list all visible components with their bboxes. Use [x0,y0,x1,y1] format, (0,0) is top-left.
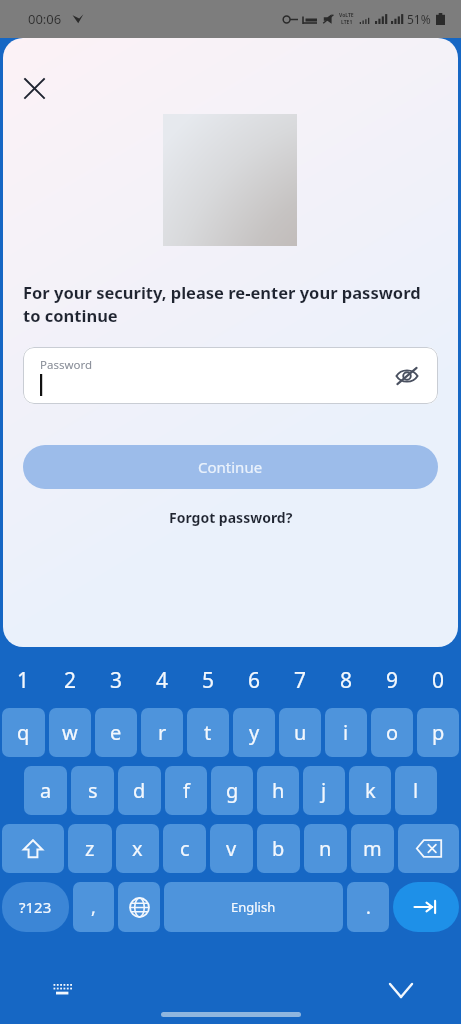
button[interactable]: s [71,766,114,815]
staticText: t [204,719,212,746]
staticText: 00:06 [28,10,62,28]
button[interactable]: a [24,766,67,815]
button[interactable]: 9 [369,659,415,701]
staticText: 4 [156,666,169,695]
staticText: r [158,719,167,746]
other: Shift [22,838,44,860]
staticText: j [321,777,327,804]
button[interactable]: 2 [47,659,93,701]
staticText: 9 [386,666,399,695]
button[interactable]: . [347,882,389,932]
staticText: g [226,777,239,804]
button[interactable]: h [257,766,299,815]
staticText: 3 [110,666,123,695]
button[interactable]: ?123 [2,882,69,932]
button[interactable]: 5 [185,659,231,701]
staticText: 7 [294,666,307,695]
button[interactable]: Show password [390,359,424,393]
button[interactable]: g [211,766,253,815]
staticText: k [365,777,376,804]
button[interactable]: Backspace [398,824,459,873]
staticText: 8 [340,666,353,695]
button[interactable]: Change language [118,882,160,932]
button[interactable]: 8 [323,659,369,701]
staticText: h [272,777,285,804]
staticText: a [40,777,52,804]
staticText: , [91,895,96,920]
button[interactable]: Enter [393,882,459,932]
staticText: 6 [248,666,261,695]
staticText: c [180,835,190,862]
button[interactable]: o [371,708,413,757]
staticText: o [386,719,399,746]
button[interactable]: Keyboard settings [48,975,78,1005]
button[interactable]: q [2,708,45,757]
button[interactable]: c [163,824,206,873]
staticText: e [110,719,122,746]
staticText: 2 [64,666,77,695]
staticText: 5 [202,666,215,695]
staticText: s [88,777,98,804]
staticText: For your security, please re-enter your … [23,281,438,327]
button[interactable]: e [95,708,137,757]
button[interactable]: m [351,824,394,873]
staticText: 1 [17,666,30,695]
staticText: z [85,835,95,862]
button[interactable]: p [417,708,459,757]
button[interactable]: 3 [93,659,139,701]
button[interactable]: y [233,708,275,757]
button[interactable]: 7 [277,659,323,701]
staticText: f [183,777,190,804]
button[interactable]: z [68,824,112,873]
button[interactable]: n [304,824,347,873]
staticText: l [413,777,419,804]
button[interactable]: r [141,708,183,757]
button[interactable]: 4 [139,659,185,701]
button[interactable]: j [303,766,345,815]
button[interactable]: Shift [2,824,64,873]
staticText: p [432,719,445,746]
button[interactable]: i [325,708,367,757]
staticText: d [133,777,146,804]
button[interactable]: w [49,708,91,757]
button[interactable]: u [279,708,321,757]
button[interactable]: l [395,766,437,815]
staticText: n [319,835,332,862]
button[interactable]: 0 [415,659,461,701]
other: Change language [129,897,150,918]
staticText: English [231,898,276,916]
button[interactable]: x [116,824,159,873]
staticText: VoLTE [339,12,354,19]
button[interactable]: Password [23,347,438,404]
button[interactable]: d [118,766,161,815]
staticText: Password [40,357,93,373]
staticText: 0 [432,666,445,695]
staticText: y [249,719,260,746]
button[interactable]: f [165,766,207,815]
staticText: v [226,835,237,862]
staticText: w [62,719,78,746]
button[interactable]: Hide keyboard [385,974,417,1006]
staticText: m [363,835,382,862]
button[interactable]: b [257,824,300,873]
staticText: . [366,895,371,920]
button[interactable]: 1 [0,659,47,701]
staticText: b [272,835,285,862]
staticText: LTE1 [341,19,353,26]
button[interactable]: English [164,882,343,932]
button[interactable]: Forgot password? [163,505,299,530]
button[interactable]: Close [16,70,52,106]
staticText: u [294,719,307,746]
button[interactable]: k [349,766,391,815]
other: Backspace [416,839,442,858]
button[interactable]: , [73,882,114,932]
staticText: ?123 [19,897,52,917]
button[interactable]: v [210,824,253,873]
staticText: i [343,719,349,746]
button[interactable]: 6 [231,659,277,701]
button[interactable]: Continue [23,445,438,489]
button[interactable]: t [187,708,229,757]
staticText: Continue [198,457,263,477]
staticText: q [17,719,30,746]
staticText: x [132,835,143,862]
